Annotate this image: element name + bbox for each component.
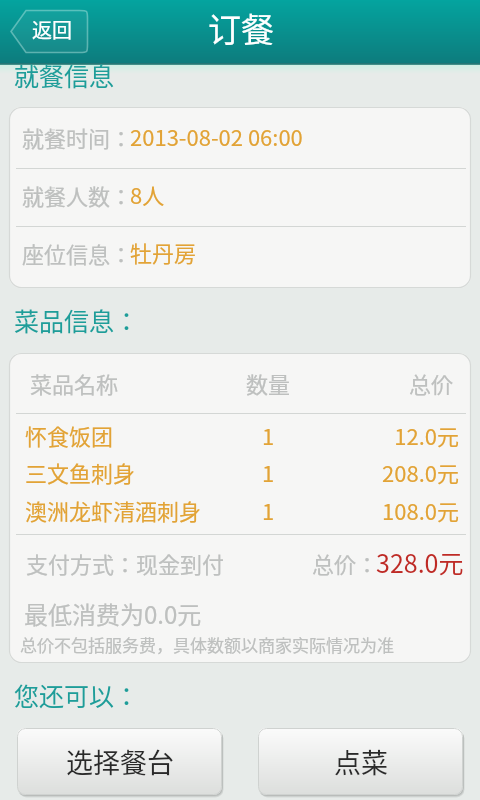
staticText: 牡丹房: [130, 236, 197, 268]
staticText: 菜品名称: [30, 367, 119, 399]
staticText: 总价不包括服务费，具体数额以商家实际情况为准: [20, 632, 394, 657]
staticText: 澳洲龙虾清酒刺身: [25, 494, 202, 526]
staticText: 座位信息：: [22, 237, 133, 269]
staticText: 怀食饭团: [25, 419, 114, 451]
staticText: 总价: [353, 367, 453, 399]
staticText: 数量: [225, 367, 311, 399]
button[interactable]: 点菜: [258, 728, 463, 795]
staticText: 返回: [32, 15, 72, 44]
staticText: 选择餐台: [66, 742, 174, 781]
staticText: 总价：: [312, 547, 379, 579]
staticText: 就餐时间：: [22, 121, 133, 153]
staticText: 208.0元: [359, 456, 459, 488]
staticText: 订餐: [208, 4, 274, 52]
button[interactable]: 选择餐台: [17, 728, 222, 795]
staticText: 12.0元: [359, 419, 459, 451]
staticText: 您还可以：: [14, 677, 140, 713]
staticText: 1: [225, 494, 311, 526]
staticText: 2013-08-02 06:00: [130, 120, 303, 152]
button[interactable]: 返回: [10, 9, 89, 54]
staticText: 就餐信息: [14, 57, 115, 93]
staticText: 点菜: [334, 742, 388, 781]
staticText: 支付方式：现金到付: [26, 547, 225, 579]
staticText: 108.0元: [359, 494, 459, 526]
staticText: 三文鱼刺身: [25, 456, 136, 488]
staticText: 328.0元: [376, 544, 464, 580]
staticText: 1: [225, 456, 311, 488]
staticText: 最低消费为0.0元: [24, 596, 202, 631]
staticText: 1: [225, 419, 311, 451]
staticText: 菜品信息：: [14, 302, 140, 338]
staticText: 就餐人数：: [22, 179, 133, 211]
staticText: 8人: [130, 178, 165, 210]
